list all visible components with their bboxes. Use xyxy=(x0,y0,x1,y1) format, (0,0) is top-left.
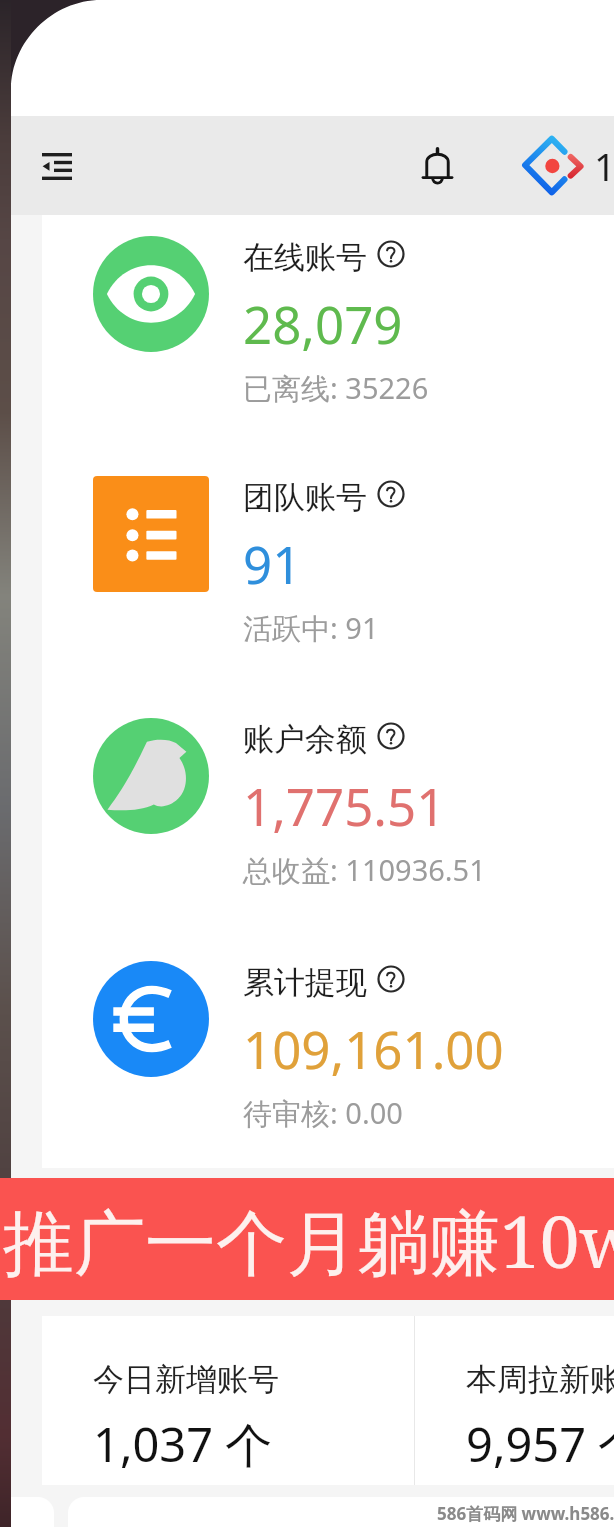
button[interactable]: 今日新增账号 xyxy=(42,1316,414,1485)
button[interactable]: Menu xyxy=(28,137,86,195)
button[interactable]: 本周拉新账号 xyxy=(415,1316,614,1485)
staticText: 推广一个月躺赚10w xyxy=(3,1192,614,1289)
button[interactable]: 团队账号 xyxy=(42,464,614,669)
staticText: 109,161.00 xyxy=(243,1014,504,1083)
button[interactable]: 累计提现 xyxy=(42,949,614,1154)
staticText: 账户余额 xyxy=(243,720,367,759)
button[interactable]: 在线账号 xyxy=(42,224,614,429)
button[interactable]: Notifications xyxy=(408,137,466,195)
staticText: 586首码网 www.h586.com xyxy=(437,1502,614,1525)
staticText: 1,037 个 xyxy=(93,1412,273,1476)
staticText: 今日新增账号 xyxy=(93,1360,279,1399)
staticText: 活跃中: 91 xyxy=(243,608,379,648)
staticText: 9,957 个 xyxy=(466,1412,614,1476)
staticText: 待审核: 0.00 xyxy=(243,1093,403,1133)
staticText: 累计提现 xyxy=(243,963,367,1002)
staticText: 91 xyxy=(243,529,302,598)
staticText: 1 xyxy=(594,140,614,192)
staticText: 1,775.51 xyxy=(243,771,446,840)
staticText: 28,079 xyxy=(243,289,403,358)
button[interactable]: 账户余额 xyxy=(42,706,614,911)
staticText: 已离线: 35226 xyxy=(243,368,429,408)
staticText: 总收益: 110936.51 xyxy=(243,850,486,890)
staticText: 本周拉新账号 xyxy=(466,1360,614,1399)
button[interactable]: Account xyxy=(522,135,614,197)
staticText: 在线账号 xyxy=(243,238,367,277)
staticText: 团队账号 xyxy=(243,478,367,517)
